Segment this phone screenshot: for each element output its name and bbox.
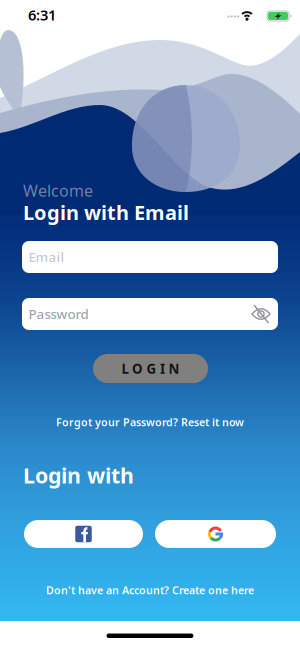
- button[interactable]: Don't have an Account? Create one here: [0, 583, 300, 597]
- staticText: Login with: [23, 461, 134, 489]
- staticText: Email: [28, 248, 64, 266]
- button[interactable]: Show password: [247, 300, 275, 328]
- staticText: Login with Email: [23, 199, 189, 226]
- staticText: Don't have an Account? Create one here: [46, 583, 254, 597]
- button[interactable]: Forgot your Password? Reset it now: [0, 415, 300, 429]
- button[interactable]: LOGIN: [93, 354, 208, 383]
- staticText: LOGIN: [121, 360, 179, 377]
- staticText: Forgot your Password? Reset it now: [56, 415, 244, 429]
- staticText: 6:31: [28, 5, 56, 24]
- staticText: Welcome: [23, 180, 93, 201]
- staticText: Password: [28, 305, 88, 323]
- button[interactable]: Login with Facebook: [24, 520, 143, 548]
- button[interactable]: Login with Google: [155, 520, 276, 548]
